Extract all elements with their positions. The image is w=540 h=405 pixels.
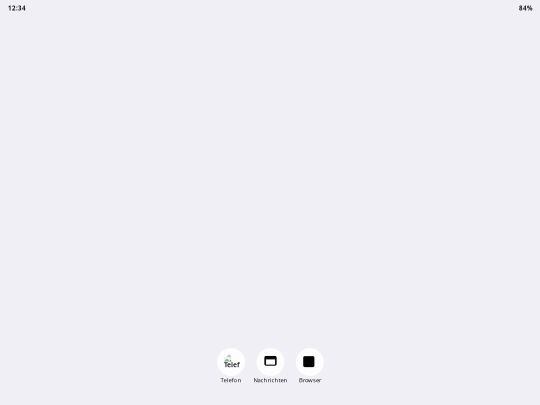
staticText: Nachrichten — [253, 376, 287, 384]
button[interactable]: Telefon — [211, 348, 251, 384]
button[interactable]: Nachrichten — [251, 348, 290, 384]
staticText: Telef — [224, 360, 240, 369]
staticText: Telefon — [221, 376, 242, 384]
staticText: 84% — [519, 4, 533, 12]
staticText: 12:34 — [8, 4, 26, 12]
button[interactable]: Browser — [290, 348, 330, 384]
staticText: Browser — [299, 376, 321, 384]
